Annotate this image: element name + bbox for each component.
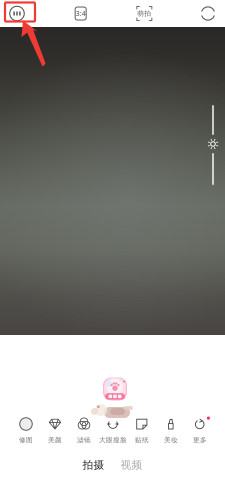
staticText: 修图: [19, 436, 33, 444]
staticText: 美妆: [164, 436, 178, 444]
button[interactable]: 贴纸: [127, 416, 156, 444]
staticText: 滤镜: [77, 436, 91, 444]
staticText: 大眼瘦脸: [99, 436, 127, 444]
button[interactable]: Aspect ratio 3 by 4: [64, 0, 98, 27]
button[interactable]: 视频: [118, 459, 144, 471]
staticText: 视频: [120, 458, 142, 471]
staticText: 3:4: [76, 9, 86, 18]
button[interactable]: 美妆: [156, 416, 185, 444]
button[interactable]: Sticker scan: [127, 0, 161, 27]
button[interactable]: More options: [0, 0, 34, 27]
staticText: 拍摄: [82, 458, 104, 471]
staticText: 美颜: [48, 436, 62, 444]
staticText: 萌拍: [137, 9, 151, 18]
button[interactable]: 美颜: [40, 416, 69, 444]
staticText: 更多: [193, 436, 207, 444]
button[interactable]: 滤镜: [69, 416, 98, 444]
button[interactable]: 修图: [11, 416, 40, 444]
staticText: 贴纸: [135, 436, 149, 444]
button[interactable]: 大眼瘦脸: [98, 416, 127, 444]
button[interactable]: Switch camera: [191, 0, 225, 27]
button[interactable]: 拍摄: [80, 459, 106, 471]
button[interactable]: 更多: [185, 416, 214, 444]
